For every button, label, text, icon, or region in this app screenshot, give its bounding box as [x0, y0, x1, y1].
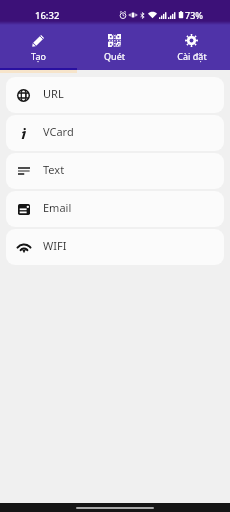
- staticText: Tạo: [31, 50, 46, 62]
- staticText: VCard: [43, 124, 74, 139]
- staticText: Email: [43, 200, 72, 215]
- staticText: 73%: [185, 9, 203, 21]
- staticText: Quét: [104, 50, 125, 62]
- button[interactable]: URL: [6, 77, 224, 113]
- button[interactable]: Text: [6, 153, 224, 189]
- staticText: 16:32: [35, 9, 60, 22]
- staticText: WIFI: [43, 238, 67, 253]
- staticText: URL: [43, 86, 64, 101]
- button[interactable]: Email: [6, 191, 224, 227]
- button[interactable]: VCard: [6, 115, 224, 151]
- button[interactable]: Tạo: [0, 25, 76, 62]
- button[interactable]: Cài đặt: [153, 25, 230, 62]
- button[interactable]: WIFI: [6, 229, 224, 265]
- staticText: Text: [43, 162, 65, 177]
- button[interactable]: Quét: [76, 25, 153, 62]
- staticText: Cài đặt: [177, 50, 207, 62]
